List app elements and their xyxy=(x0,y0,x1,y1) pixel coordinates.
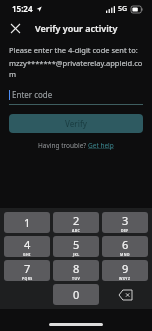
staticText: MNO xyxy=(120,252,130,257)
staticText: 4 xyxy=(24,237,31,252)
staticText: mzzy*******@privaterelay.appleid.com xyxy=(9,58,143,79)
button[interactable]: 6 xyxy=(102,236,148,257)
button[interactable]: 9 xyxy=(102,260,148,281)
button[interactable]: 5 xyxy=(53,236,99,257)
staticText: Get help xyxy=(88,141,114,150)
button[interactable]: 4 xyxy=(4,236,50,257)
staticText: 8 xyxy=(73,261,80,276)
staticText: Verify your activity xyxy=(35,22,118,34)
button[interactable]: Having trouble? xyxy=(38,141,114,150)
button[interactable]: Close xyxy=(5,18,25,38)
staticText: Having trouble? xyxy=(38,141,88,150)
button[interactable]: 7 xyxy=(4,260,50,281)
staticText: 6 xyxy=(122,237,129,252)
staticText: 0 xyxy=(73,287,80,302)
button[interactable]: 0 xyxy=(53,284,99,305)
button[interactable]: 1 xyxy=(4,212,50,233)
staticText: ABC xyxy=(72,228,81,233)
staticText: Please enter the 4-digit code sent to: xyxy=(9,45,138,55)
button[interactable]: 2 xyxy=(53,212,99,233)
staticText: JKL xyxy=(73,252,80,257)
button[interactable]: Verify xyxy=(9,114,143,133)
staticText: 2 xyxy=(73,213,80,228)
staticText: 9 xyxy=(122,261,129,276)
staticText: DEF xyxy=(121,228,129,233)
staticText: GHI xyxy=(23,252,31,257)
button[interactable]: 8 xyxy=(53,260,99,281)
staticText: 7 xyxy=(24,261,31,276)
staticText: 3 xyxy=(122,213,129,228)
staticText: PQRS xyxy=(22,276,33,281)
button[interactable]: Backspace xyxy=(102,284,148,305)
staticText: TUV xyxy=(72,276,81,281)
staticText: 5G xyxy=(118,4,128,14)
staticText: 15:24 xyxy=(12,3,33,14)
staticText: Enter code xyxy=(12,89,53,100)
button[interactable]: 3 xyxy=(102,212,148,233)
staticText: 1 xyxy=(24,215,31,230)
staticText: 5 xyxy=(73,237,80,252)
button[interactable]: Enter code xyxy=(9,89,143,105)
staticText: Verify xyxy=(65,118,87,129)
staticText: WXYZ xyxy=(119,276,131,281)
